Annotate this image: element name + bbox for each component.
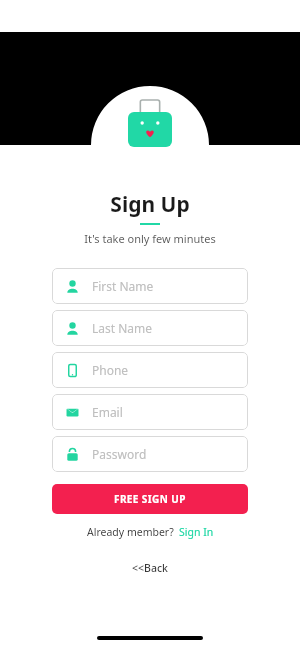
button[interactable]: Email (52, 394, 248, 430)
staticText: Phone (92, 362, 129, 378)
button[interactable]: Password (52, 436, 248, 472)
button[interactable]: Last Name (52, 310, 248, 346)
button[interactable]: Phone (52, 352, 248, 388)
button[interactable]: Sign In (179, 525, 214, 539)
staticText: <<Back (132, 561, 168, 575)
button[interactable]: FREE SIGN UP (52, 484, 248, 514)
staticText: Sign Up (110, 190, 190, 219)
staticText: FREE SIGN UP (114, 492, 186, 506)
staticText: Password (92, 446, 147, 462)
staticText: Already member? (87, 525, 174, 539)
staticText: Sign In (179, 525, 214, 539)
staticText: First Name (92, 278, 154, 294)
staticText: It's take only few minutes (84, 231, 216, 246)
staticText: Email (92, 404, 123, 420)
button[interactable]: First Name (52, 268, 248, 304)
button[interactable]: <<Back (132, 561, 168, 575)
staticText: Last Name (92, 320, 153, 336)
